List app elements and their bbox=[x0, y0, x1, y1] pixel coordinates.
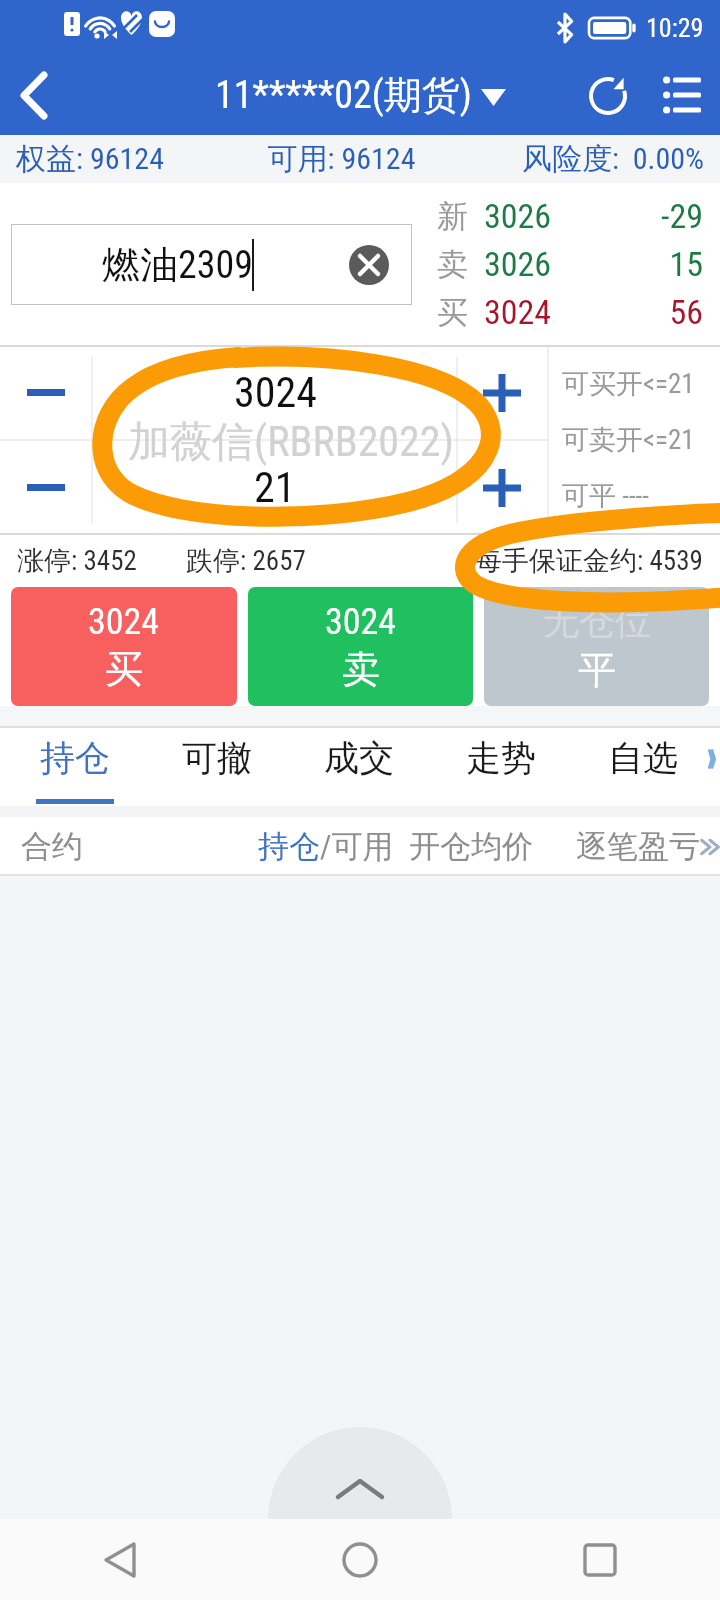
staticText: 无仓位 bbox=[543, 599, 651, 644]
button[interactable]: 燃油2309 bbox=[11, 224, 412, 305]
button[interactable]: 走势 bbox=[430, 726, 572, 806]
button[interactable]: 成交 bbox=[288, 726, 430, 806]
staticText: -29 bbox=[552, 196, 703, 236]
button[interactable]: More tabs bbox=[714, 726, 720, 806]
staticText: 11*****02(期货) bbox=[215, 71, 472, 119]
staticText: 21 bbox=[254, 463, 296, 512]
button[interactable]: Clear bbox=[349, 245, 389, 285]
button[interactable]: 无仓位 bbox=[484, 587, 709, 706]
staticText: 走势 bbox=[466, 736, 536, 780]
staticText: 3024 bbox=[484, 292, 552, 332]
staticText: 合约 bbox=[21, 827, 83, 866]
button[interactable]: Decrease bbox=[0, 440, 92, 535]
staticText: 每手保证金约: 4539 bbox=[475, 544, 703, 578]
staticText: 逐笔盈亏 bbox=[576, 827, 700, 866]
staticText: 新 bbox=[437, 197, 468, 236]
button[interactable]: Decrease bbox=[0, 345, 92, 440]
staticText: 3024 bbox=[325, 601, 397, 643]
button[interactable]: 持仓 bbox=[4, 726, 146, 806]
staticText: 成交 bbox=[324, 736, 394, 780]
staticText: 可撤 bbox=[182, 736, 252, 780]
staticText: 3024 bbox=[234, 368, 317, 417]
staticText: 3024 bbox=[88, 601, 160, 643]
staticText: 持仓 bbox=[40, 736, 110, 780]
button[interactable]: Recents bbox=[480, 1519, 720, 1600]
staticText: 开仓均价 bbox=[409, 827, 533, 866]
staticText: 涨停: 3452 bbox=[17, 544, 137, 578]
staticText: 可买开<=21 bbox=[562, 367, 695, 401]
staticText: 加薇信(RBRB2022) bbox=[128, 416, 454, 469]
staticText: 风险度: 0.00% bbox=[475, 140, 704, 178]
button[interactable]: 可撤 bbox=[146, 726, 288, 806]
button[interactable]: Menu bbox=[644, 55, 720, 135]
staticText: 跌停: 2657 bbox=[186, 544, 306, 578]
button[interactable]: 3024 bbox=[248, 587, 473, 706]
staticText: /可用 bbox=[320, 827, 394, 866]
button[interactable]: Refresh bbox=[572, 55, 644, 135]
button[interactable]: Back bbox=[0, 55, 68, 135]
staticText: 买 bbox=[437, 293, 468, 332]
button[interactable]: Back bbox=[0, 1519, 240, 1600]
staticText: 56 bbox=[552, 292, 703, 332]
staticText: 可平 ---- bbox=[562, 479, 649, 513]
staticText: 可用: 96124 bbox=[227, 140, 456, 178]
staticText: 10:29 bbox=[646, 13, 704, 43]
button[interactable]: Increase bbox=[456, 440, 548, 535]
staticText: 平 bbox=[578, 646, 616, 694]
staticText: 3026 bbox=[484, 244, 552, 284]
staticText: 权益: 96124 bbox=[16, 140, 246, 178]
staticText: 燃油2309 bbox=[102, 241, 254, 289]
staticText: 买 bbox=[105, 645, 143, 693]
staticText: 可卖开<=21 bbox=[562, 423, 695, 457]
staticText: 自选 bbox=[608, 736, 678, 780]
staticText: 卖 bbox=[437, 245, 468, 284]
staticText: 3026 bbox=[484, 196, 552, 236]
button[interactable]: Home bbox=[240, 1519, 480, 1600]
button[interactable]: 3024 bbox=[11, 587, 237, 706]
staticText: 持仓 bbox=[258, 827, 320, 866]
button[interactable]: 11*****02(期货) bbox=[215, 71, 506, 119]
button[interactable]: 自选 bbox=[572, 726, 714, 806]
button[interactable]: Increase bbox=[456, 345, 548, 440]
staticText: 卖 bbox=[342, 645, 380, 693]
staticText: 15 bbox=[552, 244, 703, 284]
